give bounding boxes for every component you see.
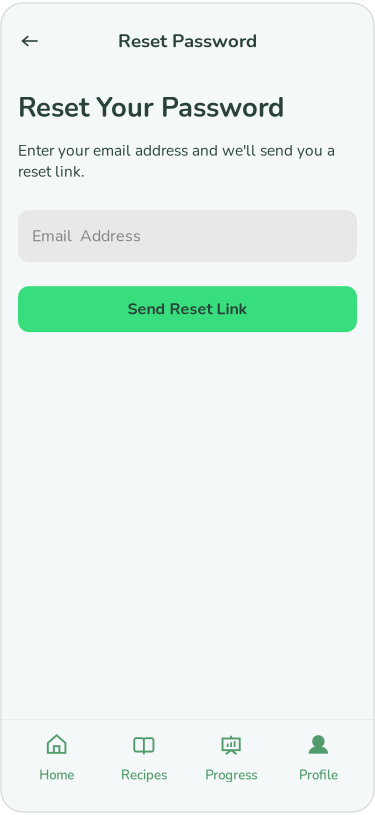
button[interactable]: Home xyxy=(13,720,100,794)
button[interactable]: Back xyxy=(11,22,49,60)
button[interactable]: Profile xyxy=(275,720,362,794)
staticText: Send Reset Link xyxy=(127,298,247,320)
staticText: Enter your email address and we'll send … xyxy=(18,140,335,182)
button[interactable]: Recipes xyxy=(100,720,187,794)
staticText: Recipes xyxy=(121,766,167,784)
staticText: Reset Your Password xyxy=(18,89,284,126)
staticText: Reset Password xyxy=(118,28,257,54)
staticText: Progress xyxy=(205,766,257,784)
button[interactable]: Progress xyxy=(187,720,275,794)
button[interactable]: Send Reset Link xyxy=(18,286,357,332)
staticText: Profile xyxy=(299,766,338,784)
staticText: Email Address xyxy=(32,225,141,247)
staticText: Home xyxy=(39,766,74,784)
